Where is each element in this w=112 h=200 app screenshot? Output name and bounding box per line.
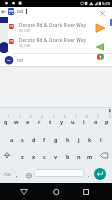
button[interactable]: m	[84, 152, 95, 160]
button[interactable]	[0, 8, 7, 17]
staticText: k	[88, 136, 92, 143]
staticText: 00, DB1	[19, 44, 31, 48]
button[interactable]: x	[28, 152, 39, 160]
staticText: w	[14, 118, 19, 125]
button[interactable]: .	[83, 171, 94, 179]
staticText: o	[94, 118, 98, 125]
button[interactable]	[17, 185, 31, 197]
staticText: z	[21, 153, 24, 160]
staticText: y	[60, 118, 64, 125]
button[interactable]: d	[28, 135, 39, 143]
button[interactable]: j	[73, 135, 84, 143]
button[interactable]: u	[67, 117, 78, 125]
staticText: h	[66, 136, 70, 143]
staticText: c	[43, 153, 46, 160]
button[interactable]: v	[50, 152, 61, 160]
button[interactable]: Decoto Rd & Ozark River Way	[8, 35, 112, 53]
button[interactable]: ?123	[1, 170, 13, 179]
staticText: t	[49, 118, 52, 125]
button[interactable]: h	[62, 135, 73, 143]
staticText: 8	[86, 115, 88, 119]
button[interactable]	[8, 8, 14, 15]
staticText: f	[43, 136, 46, 143]
button[interactable]	[25, 171, 33, 180]
staticText: v	[54, 153, 58, 160]
button[interactable]: g	[50, 135, 61, 143]
staticText: i	[83, 118, 85, 125]
button[interactable]	[1, 151, 13, 160]
button[interactable]: n	[73, 152, 84, 160]
staticText: n	[77, 153, 81, 160]
staticText: a	[10, 136, 14, 143]
staticText: j	[78, 136, 80, 143]
button[interactable]: i	[78, 117, 89, 125]
staticText: .	[88, 172, 90, 179]
staticText: 1	[8, 115, 10, 119]
button[interactable]	[49, 185, 63, 197]
staticText: Decoto Rd & Ozark River Way	[19, 37, 87, 43]
button[interactable]: y	[56, 117, 67, 125]
staticText: 4	[41, 115, 43, 119]
staticText: 6	[64, 115, 66, 119]
button[interactable]: e	[22, 117, 33, 125]
staticText: ,	[16, 172, 18, 179]
staticText: ?123	[4, 173, 11, 177]
staticText: DB1	[7, 59, 11, 62]
staticText: 3	[30, 115, 32, 119]
staticText: 5	[53, 115, 55, 119]
button[interactable]: DB1	[0, 53, 112, 66]
button[interactable]: l	[95, 135, 106, 143]
staticText: DB1	[17, 58, 24, 63]
staticText: 0	[109, 115, 111, 119]
staticText: l	[100, 136, 102, 143]
staticText: g	[54, 136, 58, 143]
staticText: q	[4, 118, 8, 125]
button[interactable]: s	[17, 135, 28, 143]
button[interactable]: b	[62, 152, 73, 160]
button[interactable]: k	[84, 135, 95, 143]
staticText: d	[32, 136, 36, 143]
button[interactable]: f	[39, 135, 50, 143]
staticText: m	[87, 153, 93, 160]
staticText: s	[21, 136, 24, 143]
button[interactable]: z	[17, 152, 28, 160]
staticText: b	[66, 153, 70, 160]
button[interactable]: c	[39, 152, 50, 160]
button[interactable]: r	[34, 117, 45, 125]
button[interactable]	[99, 10, 106, 17]
staticText: 2	[19, 115, 21, 119]
button[interactable]	[99, 151, 111, 160]
staticText: od	[17, 8, 23, 15]
staticText: Decoto Rd & Ozark River Way	[19, 22, 87, 28]
button[interactable]: ,	[11, 171, 22, 179]
button[interactable]: Decoto Rd & Ozark River Way	[8, 17, 112, 35]
button[interactable]	[79, 185, 93, 197]
staticText: e	[26, 118, 30, 125]
button[interactable]	[94, 168, 106, 180]
button[interactable]: q	[0, 117, 11, 125]
staticText: r	[38, 118, 41, 125]
staticText: 00, DB1	[19, 29, 31, 33]
button[interactable]: p	[101, 117, 112, 125]
button[interactable]	[34, 169, 84, 177]
staticText: x	[32, 153, 36, 160]
staticText: 7	[75, 115, 77, 119]
staticText: p	[105, 118, 109, 125]
button[interactable]: a	[6, 135, 17, 143]
button[interactable]: t	[45, 117, 56, 125]
staticText: u	[71, 118, 75, 125]
staticText: 9	[97, 115, 99, 119]
staticText: 5:39	[102, 1, 110, 6]
button[interactable]: w	[11, 117, 22, 125]
button[interactable]: o	[90, 117, 101, 125]
